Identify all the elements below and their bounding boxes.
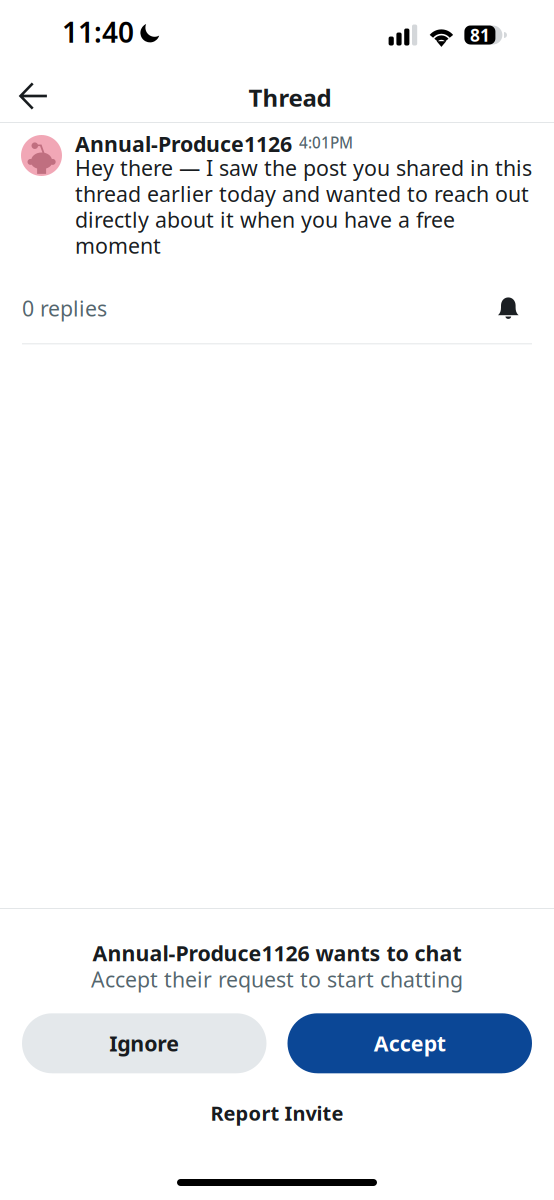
staticText: 81 bbox=[470, 23, 490, 47]
button[interactable]: Ignore bbox=[22, 1013, 266, 1073]
staticText: Report Invite bbox=[210, 1099, 343, 1126]
staticText: Accept their request to start chatting bbox=[91, 966, 463, 992]
button[interactable]: Back bbox=[9, 71, 59, 121]
staticText: Thread bbox=[248, 81, 331, 114]
staticText: 0 replies bbox=[22, 294, 107, 323]
staticText: Annual-Produce1126 bbox=[75, 133, 292, 155]
button[interactable]: Accept bbox=[287, 1013, 532, 1073]
staticText: 11:40 bbox=[62, 13, 134, 51]
button[interactable]: Report Invite bbox=[192, 1089, 361, 1136]
staticText: 4:01PM bbox=[299, 132, 353, 153]
staticText: Hey there — I saw the post you shared in… bbox=[75, 155, 532, 258]
button[interactable]: Notifications bbox=[488, 287, 530, 329]
staticText: Ignore bbox=[109, 1029, 179, 1058]
staticText: Annual-Produce1126 wants to chat bbox=[92, 940, 461, 966]
staticText: Accept bbox=[374, 1029, 446, 1058]
